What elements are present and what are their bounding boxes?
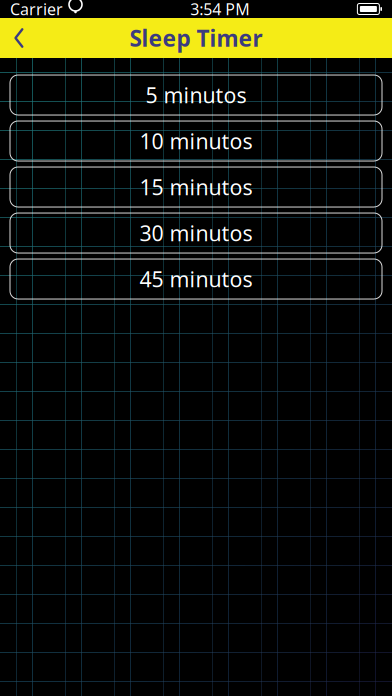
button[interactable]: 10 minutos (10, 121, 382, 161)
staticText: 30 minutos (139, 219, 252, 247)
button[interactable]: Back (4, 18, 34, 58)
button[interactable]: 30 minutos (10, 213, 382, 253)
staticText: 45 minutos (139, 265, 252, 293)
staticText: 5 minutos (145, 81, 246, 109)
button[interactable]: 15 minutos (10, 167, 382, 207)
button[interactable]: 5 minutos (10, 75, 382, 115)
staticText: Carrier (10, 0, 63, 20)
staticText: 10 minutos (139, 127, 252, 155)
staticText: 15 minutos (139, 173, 252, 201)
staticText: 3:54 PM (190, 0, 250, 20)
button[interactable]: 45 minutos (10, 259, 382, 299)
staticText: Sleep Timer (129, 23, 262, 53)
